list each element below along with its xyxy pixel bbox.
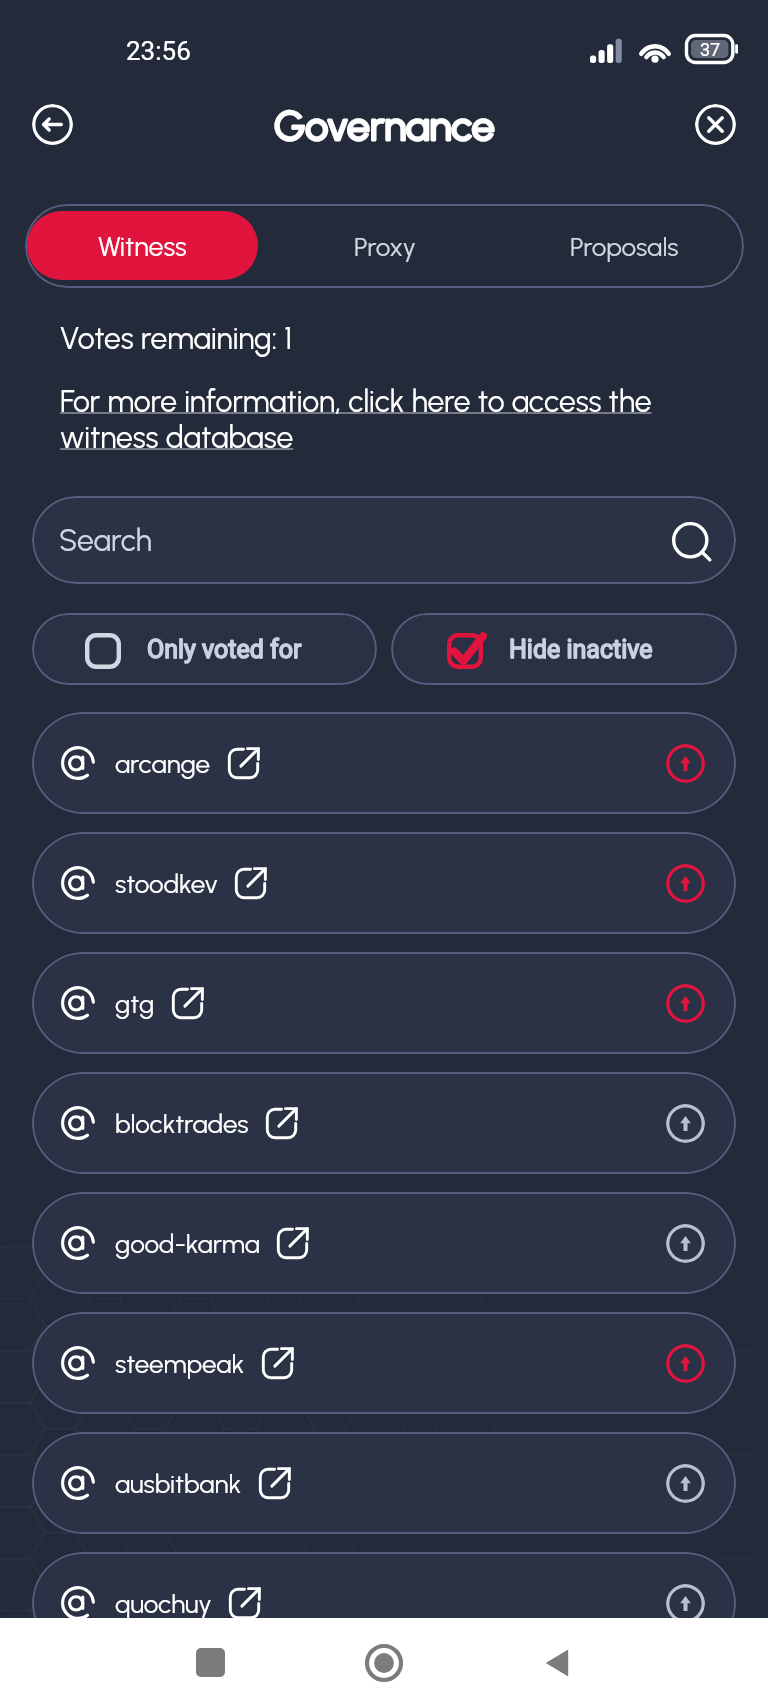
staticText: arcange (115, 748, 211, 779)
button[interactable]: Open quochuy profile (228, 1587, 261, 1620)
staticText: blocktrades (115, 1108, 249, 1139)
staticText: Votes remaining: 1 (60, 320, 293, 356)
button[interactable]: Back (526, 1618, 590, 1707)
staticText: Hide inactive (509, 635, 653, 664)
button[interactable]: Hide inactive (391, 613, 737, 685)
button[interactable]: Proposals (505, 204, 744, 288)
button[interactable]: Vote for gtg (666, 984, 705, 1023)
button[interactable]: Recent apps (178, 1618, 242, 1707)
staticText: For more information, click here to acce… (60, 383, 678, 455)
button[interactable]: Open arcange profile (227, 747, 260, 780)
staticText: Hide inactive (509, 635, 653, 664)
other: Search (672, 522, 711, 561)
button[interactable]: arcange (32, 712, 736, 814)
button[interactable]: Vote for quochuy (666, 1584, 705, 1623)
staticText: good-karma (115, 1228, 260, 1259)
button[interactable]: gtg (32, 952, 736, 1054)
button[interactable]: Open ausbitbank profile (258, 1467, 291, 1500)
button[interactable]: blocktrades (32, 1072, 736, 1174)
button[interactable]: quochuy (32, 1552, 736, 1654)
staticText: Search (59, 522, 672, 558)
button[interactable]: stoodkev (32, 832, 736, 934)
button[interactable]: Close (695, 104, 736, 145)
button[interactable]: Open good-karma profile (276, 1227, 309, 1260)
button[interactable]: For more information, click here to acce… (60, 383, 678, 455)
button[interactable]: Vote for ausbitbank (666, 1464, 705, 1503)
button[interactable]: Vote for stoodkev (666, 864, 705, 903)
staticText: Proxy (354, 231, 417, 262)
staticText: gtg (115, 988, 155, 1019)
button[interactable]: Back (32, 104, 73, 145)
button[interactable]: Open blocktrades profile (265, 1107, 298, 1140)
staticText: Proposals (570, 231, 679, 262)
staticText: stoodkev (115, 868, 218, 899)
button[interactable]: Vote for good-karma (666, 1224, 705, 1263)
staticText: 23:56 (126, 36, 191, 66)
staticText: Governance (274, 101, 495, 150)
staticText: Only voted for (147, 635, 302, 664)
button[interactable]: Open stoodkev profile (234, 867, 267, 900)
button[interactable]: Vote for steempeak (666, 1344, 705, 1383)
staticText: Governance (274, 101, 495, 150)
staticText: steempeak (115, 1348, 245, 1379)
button[interactable]: ausbitbank (32, 1432, 736, 1534)
button[interactable]: steempeak (32, 1312, 736, 1414)
button[interactable]: Open steempeak profile (261, 1347, 294, 1380)
button[interactable]: Vote for arcange (666, 744, 705, 783)
button[interactable]: Only voted for (32, 613, 377, 685)
button[interactable]: Proxy (265, 204, 505, 288)
staticText: ausbitbank (115, 1468, 242, 1499)
button[interactable]: good-karma (32, 1192, 736, 1294)
button[interactable]: Vote for blocktrades (666, 1104, 705, 1143)
button[interactable]: Home (352, 1618, 416, 1707)
staticText: 37 (700, 39, 721, 60)
staticText: Only voted for (147, 635, 302, 664)
staticText: Witness (98, 230, 187, 262)
staticText: quochuy (115, 1588, 212, 1619)
button[interactable]: Search (32, 496, 736, 584)
button[interactable]: Open gtg profile (171, 987, 204, 1020)
button[interactable]: Witness (27, 211, 258, 280)
